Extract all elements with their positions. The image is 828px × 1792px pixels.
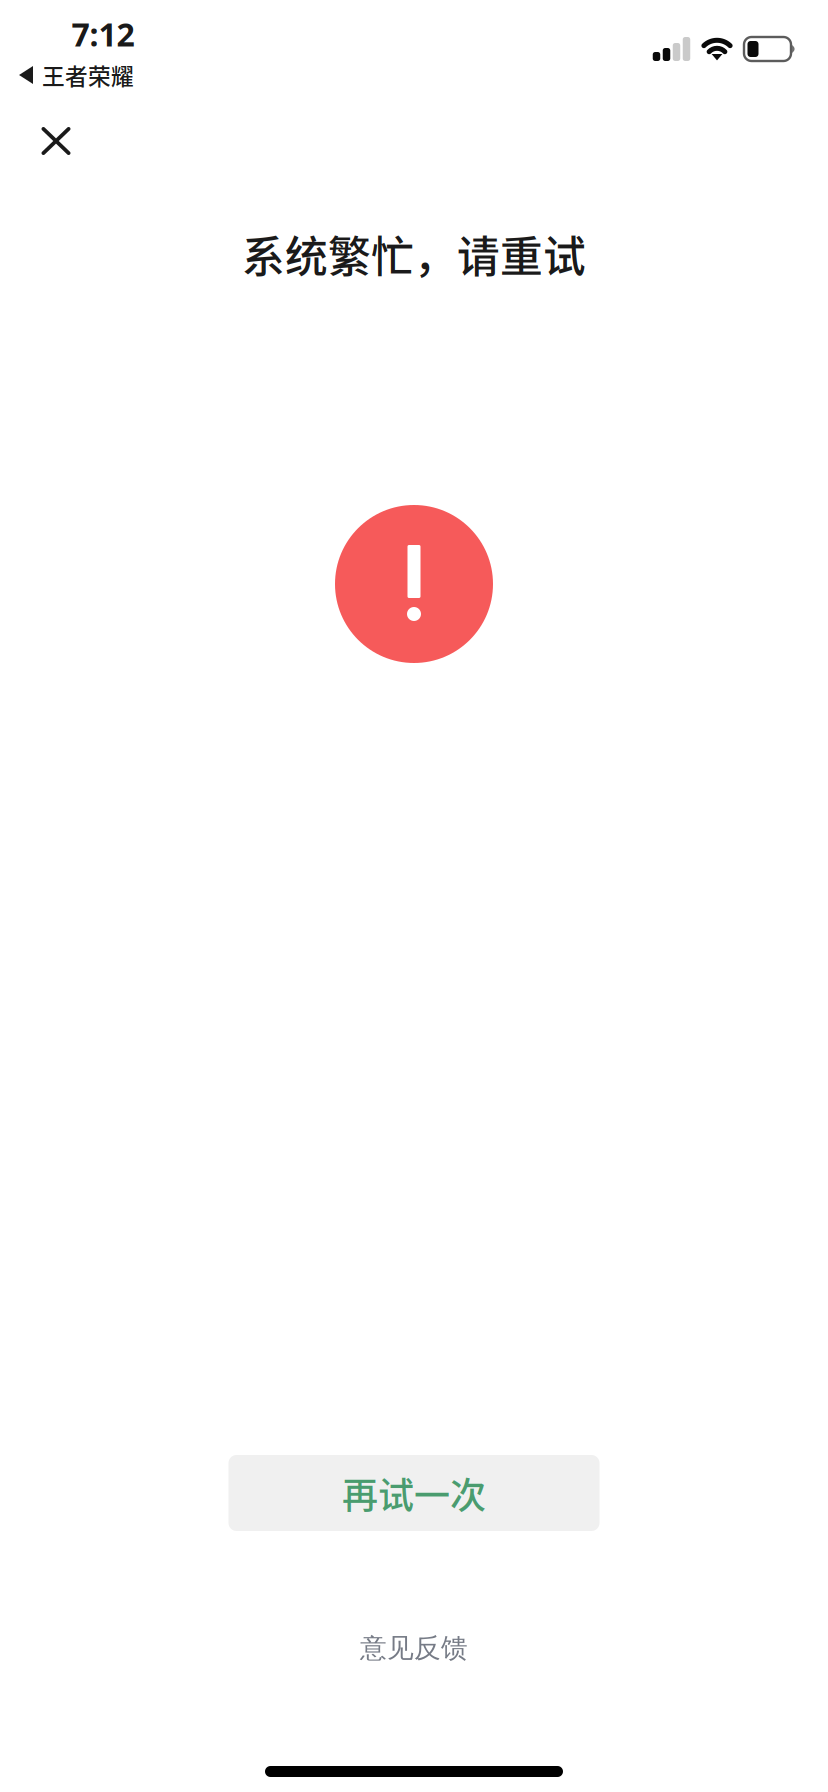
button[interactable]: Close xyxy=(14,96,98,186)
button[interactable]: 再试一次 xyxy=(228,1455,599,1531)
staticText: 再试一次 xyxy=(342,1467,486,1519)
staticText: 7:12 xyxy=(71,13,134,55)
button[interactable]: 王者荣耀 xyxy=(0,60,148,90)
button[interactable]: 意见反馈 xyxy=(326,1628,502,1668)
staticText: 系统繁忙，请重试 xyxy=(242,223,586,285)
staticText: 意见反馈 xyxy=(360,1632,468,1664)
staticText: 王者荣耀 xyxy=(42,59,134,91)
